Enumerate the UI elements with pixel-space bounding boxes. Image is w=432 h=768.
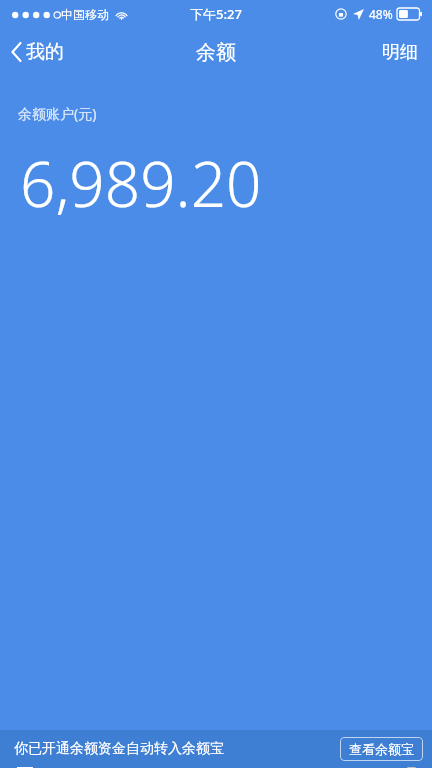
staticText: 余额 [196, 40, 236, 65]
button[interactable]: 明细 [368, 33, 432, 72]
button[interactable]: 查看余额宝 [340, 737, 423, 761]
staticText: 余额账户(元) [18, 104, 97, 123]
staticText: 48% [369, 6, 393, 22]
staticText: 你已开通余额资金自动转入余额宝 [14, 740, 224, 758]
staticText: 中国移动 [61, 7, 109, 22]
staticText: 明细 [382, 41, 418, 64]
button[interactable]: 我的 [0, 34, 76, 70]
staticText: 查看余额宝 [349, 741, 414, 757]
staticText: 下午5:27 [190, 5, 242, 23]
staticText: 6,989.20 [20, 141, 262, 225]
staticText: 我的 [26, 40, 64, 64]
